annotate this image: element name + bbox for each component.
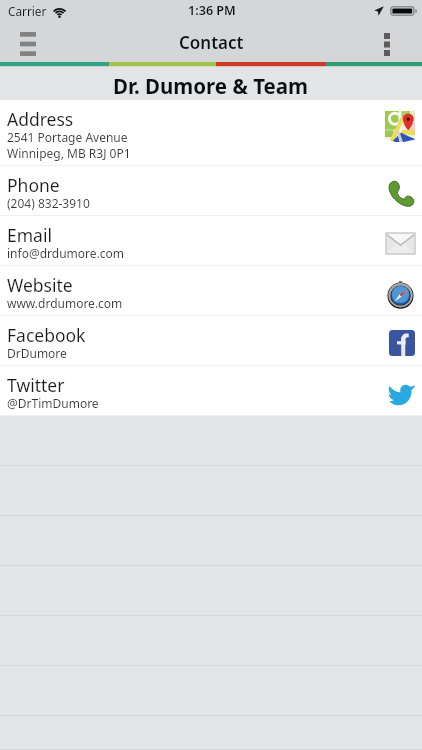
staticText: Dr. Dumore & Team bbox=[113, 72, 309, 100]
staticText: Address bbox=[7, 107, 74, 131]
staticText: 2541 Portage Avenue bbox=[7, 129, 128, 145]
button[interactable]: Website bbox=[0, 266, 422, 316]
staticText: @DrTimDumore bbox=[7, 395, 99, 411]
staticText: Website bbox=[7, 273, 73, 297]
staticText: Email bbox=[7, 223, 52, 247]
staticText: DrDumore bbox=[7, 345, 67, 361]
button[interactable]: More options bbox=[375, 26, 399, 62]
button[interactable]: Facebook bbox=[0, 316, 422, 366]
button[interactable]: Phone bbox=[0, 166, 422, 216]
button[interactable]: Email bbox=[0, 216, 422, 266]
staticText: info@drdumore.com bbox=[7, 245, 125, 261]
button[interactable]: Twitter bbox=[0, 366, 422, 416]
button[interactable]: Address bbox=[0, 100, 422, 166]
staticText: Twitter bbox=[7, 373, 65, 397]
staticText: Winnipeg, MB R3J 0P1 bbox=[7, 145, 131, 161]
staticText: 1:36 PM bbox=[188, 2, 236, 19]
staticText: Phone bbox=[7, 173, 60, 197]
staticText: (204) 832-3910 bbox=[7, 195, 90, 211]
staticText: Contact bbox=[179, 31, 244, 54]
staticText: www.drdumore.com bbox=[7, 295, 123, 311]
button[interactable]: Menu bbox=[8, 26, 48, 62]
staticText: Facebook bbox=[7, 323, 86, 347]
staticText: Carrier bbox=[8, 3, 47, 19]
